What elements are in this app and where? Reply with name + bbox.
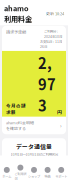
- staticText: データ通信量: [16, 142, 52, 151]
- staticText: 円: [57, 109, 62, 116]
- staticText: ›: [60, 122, 62, 129]
- button[interactable]: ショップ: [27, 167, 41, 178]
- staticText: 特典: [45, 174, 51, 178]
- staticText: 今月の請求額: [6, 102, 26, 116]
- staticText: 10月1日〜10月31日のご利用状況: [10, 152, 57, 157]
- staticText: ご利用分 : 2024年10月: [44, 29, 62, 39]
- button[interactable]: サポート: [54, 167, 68, 178]
- staticText: お支払日 : 11月26日: [40, 39, 62, 49]
- staticText: ショップ: [28, 174, 40, 178]
- staticText: 2,973: [38, 52, 56, 116]
- staticText: サポート: [55, 174, 67, 178]
- button[interactable]: 特典: [41, 167, 54, 178]
- button[interactable]: ホーム: [0, 167, 14, 178]
- staticText: ご利用状況: [14, 172, 26, 181]
- staticText: 請求予定額: [6, 29, 26, 35]
- staticText: ホーム: [2, 174, 11, 178]
- button[interactable]: ご利用状況: [14, 165, 27, 181]
- staticText: ahamo料金明細を確認する: [6, 120, 34, 131]
- staticText: 更新 10:24: [46, 10, 64, 16]
- staticText: ahamo利用料金: [4, 3, 32, 24]
